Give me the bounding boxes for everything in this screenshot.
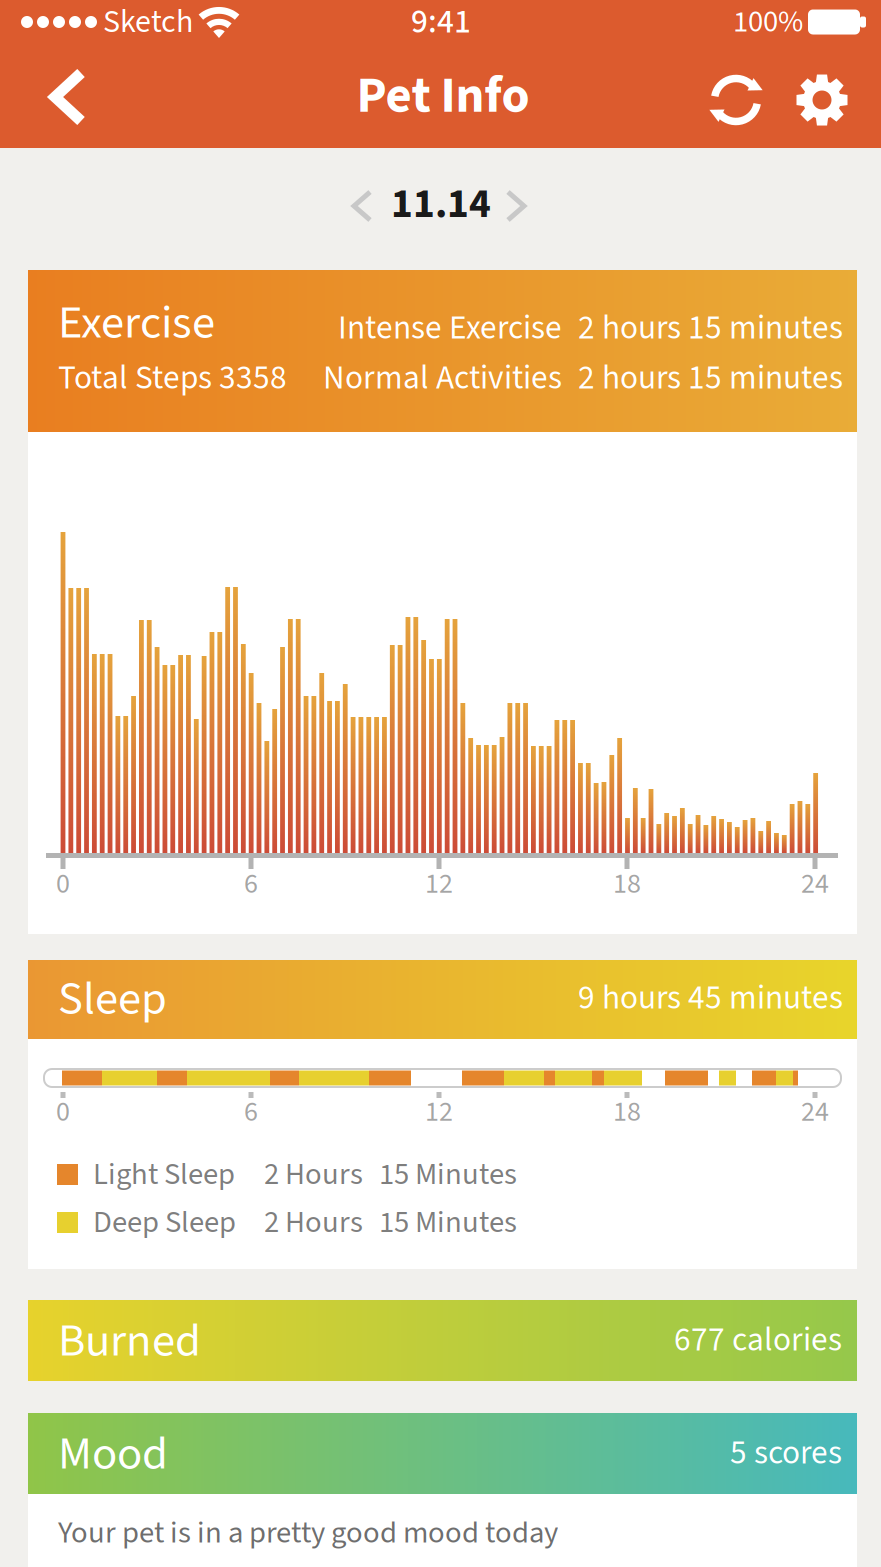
button[interactable]: Next day bbox=[496, 180, 536, 232]
staticText: 24 bbox=[801, 865, 829, 903]
staticText: 9:41 bbox=[411, 0, 471, 45]
staticText: Sleep bbox=[58, 967, 167, 1031]
staticText: 12 bbox=[425, 865, 453, 903]
staticText: Burned bbox=[58, 1309, 201, 1373]
staticText: 2 Hours bbox=[264, 1153, 363, 1196]
staticText: 677 calories bbox=[674, 1317, 842, 1363]
staticText: Deep Sleep bbox=[93, 1201, 236, 1244]
staticText: 18 bbox=[613, 1093, 641, 1131]
staticText: 24 bbox=[801, 1093, 829, 1131]
staticText: 12 bbox=[425, 1093, 453, 1131]
staticText: 11.14 bbox=[391, 175, 491, 233]
staticText: Intense Exercise bbox=[338, 305, 562, 351]
staticText: 100% bbox=[733, 1, 803, 43]
button[interactable]: Previous day bbox=[342, 180, 382, 232]
staticText: 15 Minutes bbox=[379, 1153, 517, 1196]
staticText: 2 hours 15 minutes bbox=[578, 305, 843, 351]
staticText: 6 bbox=[244, 1093, 258, 1131]
staticText: 0 bbox=[56, 1093, 70, 1131]
staticText: 15 Minutes bbox=[379, 1201, 517, 1244]
button[interactable]: Refresh bbox=[703, 67, 769, 133]
staticText: 9 hours 45 minutes bbox=[578, 975, 843, 1021]
staticText: 6 bbox=[244, 865, 258, 903]
button[interactable]: Back bbox=[33, 59, 103, 135]
staticText: Your pet is in a pretty good mood today bbox=[58, 1512, 558, 1554]
button[interactable]: Settings bbox=[788, 66, 856, 134]
staticText: 18 bbox=[613, 865, 641, 903]
staticText: Mood bbox=[58, 1422, 168, 1486]
staticText: 2 hours 15 minutes bbox=[578, 355, 843, 401]
staticText: Pet Info bbox=[356, 61, 529, 131]
staticText: Normal Activities bbox=[323, 355, 562, 401]
staticText: Light Sleep bbox=[93, 1153, 235, 1196]
staticText: Sketch bbox=[103, 0, 193, 44]
staticText: 0 bbox=[56, 865, 70, 903]
staticText: 2 Hours bbox=[264, 1201, 363, 1244]
staticText: 5 scores bbox=[730, 1430, 842, 1476]
staticText: Exercise bbox=[58, 291, 215, 355]
staticText: Total Steps 3358 bbox=[58, 355, 287, 401]
